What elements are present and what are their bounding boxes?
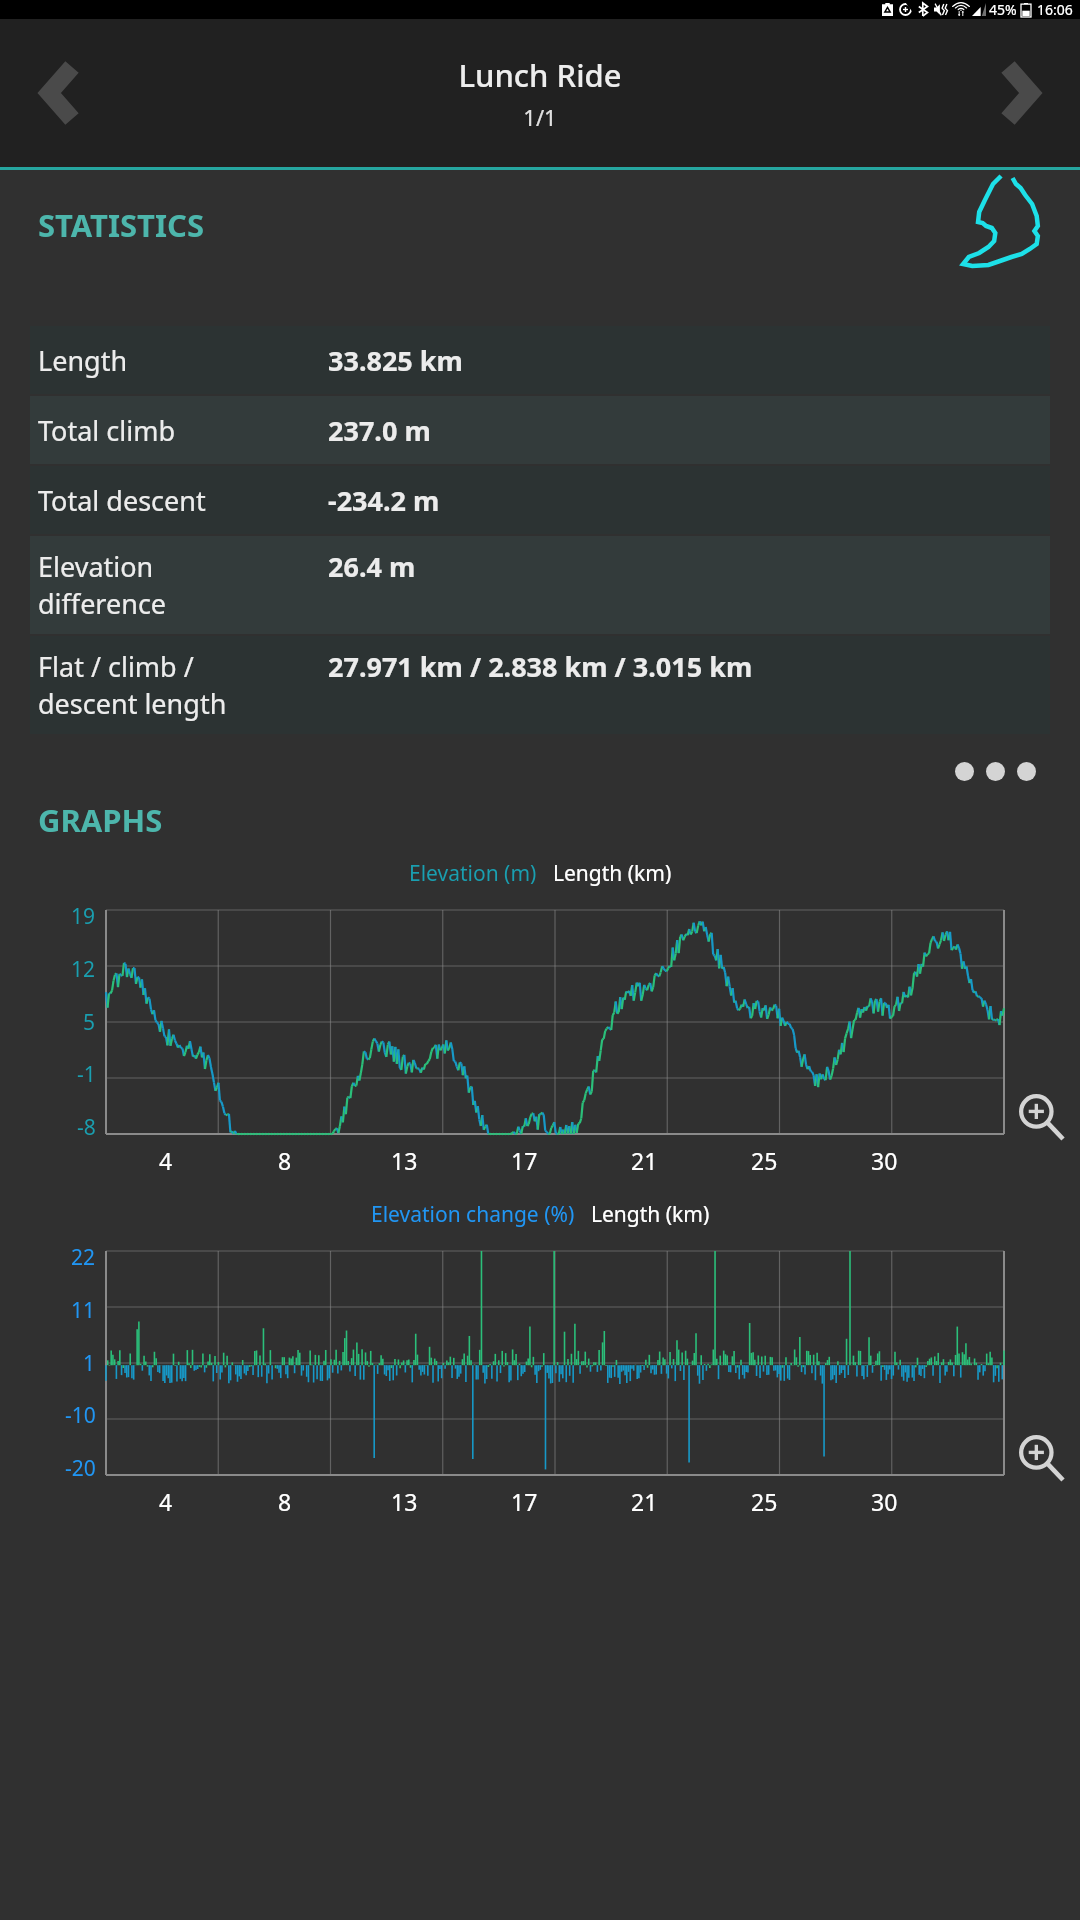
button[interactable]: Length (30, 326, 1050, 394)
staticText: 4 (159, 1145, 173, 1176)
staticText: 26.4 m (328, 548, 416, 585)
staticText: 21 (631, 1486, 658, 1517)
staticText: -234.2 m (328, 482, 440, 519)
staticText: 12 (71, 955, 96, 984)
staticText: Elevation difference (38, 548, 167, 622)
staticText: 22 (71, 1243, 96, 1272)
staticText: 19 (71, 902, 96, 931)
staticText: Length (km) (553, 859, 672, 888)
button[interactable]: Zoom in (1010, 1427, 1070, 1487)
staticText: Lunch Ride (458, 54, 622, 96)
staticText: 8 (278, 1145, 292, 1176)
staticText: 30 (871, 1145, 898, 1176)
staticText: 8 (278, 1486, 292, 1517)
staticText: GRAPHS (38, 799, 163, 841)
staticText: 25 (751, 1145, 778, 1176)
button[interactable]: Total climb (30, 396, 1050, 464)
staticText: Elevation (m) (409, 859, 537, 888)
button[interactable]: Flat / climb / descent length (30, 636, 1050, 734)
staticText: -10 (65, 1401, 96, 1430)
staticText: 237.0 m (328, 412, 431, 449)
staticText: Length (km) (591, 1200, 710, 1229)
staticText: 1 (83, 1349, 96, 1378)
button[interactable]: Zoom in (1010, 1086, 1070, 1146)
staticText: 13 (391, 1145, 418, 1176)
staticText: 11 (71, 1296, 96, 1325)
staticText: -8 (77, 1113, 96, 1142)
button[interactable]: Elevation difference (30, 536, 1050, 634)
staticText: 21 (631, 1145, 658, 1176)
button[interactable]: Previous (0, 38, 110, 148)
staticText: Length (38, 342, 128, 379)
staticText: STATISTICS (38, 204, 205, 246)
staticText: 33.825 km (328, 342, 463, 379)
button[interactable]: Next (970, 38, 1080, 148)
staticText: Flat / climb / descent length (38, 648, 227, 722)
staticText: 4 (159, 1486, 173, 1517)
staticText: 5 (83, 1008, 96, 1037)
staticText: Total descent (38, 482, 206, 519)
staticText: 17 (511, 1486, 538, 1517)
staticText: 16:06 (1037, 0, 1073, 19)
staticText: 30 (871, 1486, 898, 1517)
staticText: 17 (511, 1145, 538, 1176)
staticText: 45% (989, 0, 1017, 19)
staticText: Total climb (38, 412, 176, 449)
staticText: 1/1 (523, 102, 557, 132)
staticText: 25 (751, 1486, 778, 1517)
staticText: -1 (77, 1060, 96, 1089)
button[interactable]: Total descent (30, 466, 1050, 534)
staticText: 27.971 km / 2.838 km / 3.015 km (328, 648, 753, 685)
staticText: Elevation change (%) (371, 1200, 575, 1229)
staticText: 13 (391, 1486, 418, 1517)
staticText: -20 (65, 1454, 96, 1483)
